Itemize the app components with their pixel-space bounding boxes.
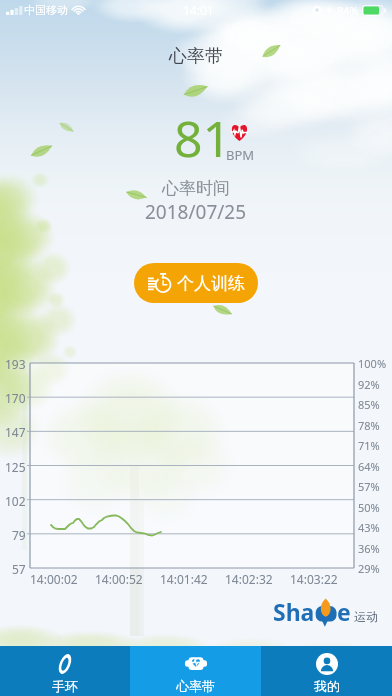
- staticText: 57: [12, 561, 26, 577]
- staticText: 100%: [358, 356, 387, 371]
- staticText: BPM: [226, 146, 255, 164]
- staticText: 36%: [358, 541, 380, 556]
- staticText: 147: [5, 424, 26, 440]
- staticText: 81: [174, 104, 232, 172]
- staticText: 29%: [358, 561, 380, 576]
- staticText: 102: [5, 493, 26, 509]
- staticText: e: [337, 596, 351, 627]
- staticText: 14:01:42: [160, 571, 208, 587]
- staticText: 64%: [358, 459, 380, 474]
- staticText: 14:00:02: [30, 571, 78, 587]
- staticText: 手环: [52, 678, 78, 694]
- staticText: 71%: [358, 438, 380, 453]
- staticText: 85%: [358, 397, 380, 412]
- staticText: 50%: [358, 500, 380, 515]
- staticText: 心率时间: [162, 178, 230, 199]
- staticText: 运动: [354, 609, 378, 624]
- staticText: 125: [5, 459, 26, 475]
- staticText: 92%: [358, 377, 380, 392]
- staticText: 170: [5, 390, 26, 406]
- button[interactable]: 我的: [261, 646, 392, 696]
- staticText: 84%: [337, 3, 359, 18]
- button[interactable]: 个人训练: [134, 263, 258, 303]
- staticText: 14:00:52: [95, 571, 143, 587]
- staticText: 193: [5, 356, 26, 372]
- staticText: 43%: [358, 520, 380, 535]
- staticText: 14:03:22: [290, 571, 338, 587]
- staticText: 心率带: [169, 45, 223, 68]
- staticText: 中国移动: [24, 3, 68, 17]
- staticText: 78%: [358, 418, 380, 433]
- staticText: 14:02:32: [225, 571, 273, 587]
- staticText: 57%: [358, 479, 380, 494]
- staticText: Sha: [273, 596, 315, 627]
- staticText: 14:01: [183, 2, 214, 18]
- staticText: 2018/07/25: [145, 199, 247, 225]
- button[interactable]: 手环: [0, 646, 130, 696]
- staticText: 我的: [314, 678, 340, 694]
- staticText: 79: [12, 527, 26, 543]
- staticText: 心率带: [176, 678, 215, 694]
- staticText: 个人训练: [177, 273, 245, 294]
- button[interactable]: 心率带: [130, 646, 261, 696]
